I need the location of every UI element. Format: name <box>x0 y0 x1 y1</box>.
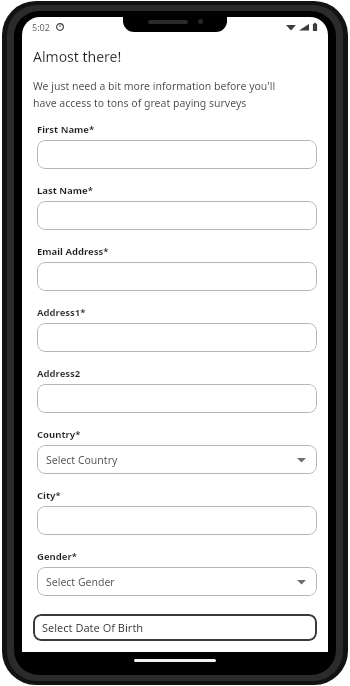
staticText: have access to tons of great paying surv… <box>33 96 247 110</box>
staticText: Country* <box>37 428 81 441</box>
staticText: Email Address* <box>37 245 109 258</box>
staticText: Select Country <box>46 453 118 467</box>
other: Open dropdown <box>297 579 306 585</box>
button[interactable] <box>37 506 317 535</box>
button[interactable]: Select Gender <box>37 567 317 596</box>
staticText: 5:02 <box>32 21 50 33</box>
button[interactable] <box>37 384 317 413</box>
staticText: Select Date Of Birth <box>42 620 144 635</box>
button[interactable] <box>37 201 317 230</box>
staticText: We just need a bit more information befo… <box>33 79 276 93</box>
other: Open dropdown <box>297 457 306 463</box>
staticText: Address2 <box>37 367 81 380</box>
staticText: Last Name* <box>37 184 93 197</box>
button[interactable]: Select Country <box>37 445 317 474</box>
staticText: First Name* <box>37 123 95 136</box>
staticText: Gender* <box>37 550 77 563</box>
staticText: Address1* <box>37 306 86 319</box>
button[interactable] <box>37 262 317 291</box>
staticText: Select Gender <box>46 575 115 589</box>
button[interactable] <box>37 323 317 352</box>
button[interactable]: Select Date Of Birth <box>33 614 317 641</box>
staticText: City* <box>37 489 61 502</box>
button[interactable] <box>37 140 317 169</box>
staticText: Almost there! <box>33 47 122 66</box>
